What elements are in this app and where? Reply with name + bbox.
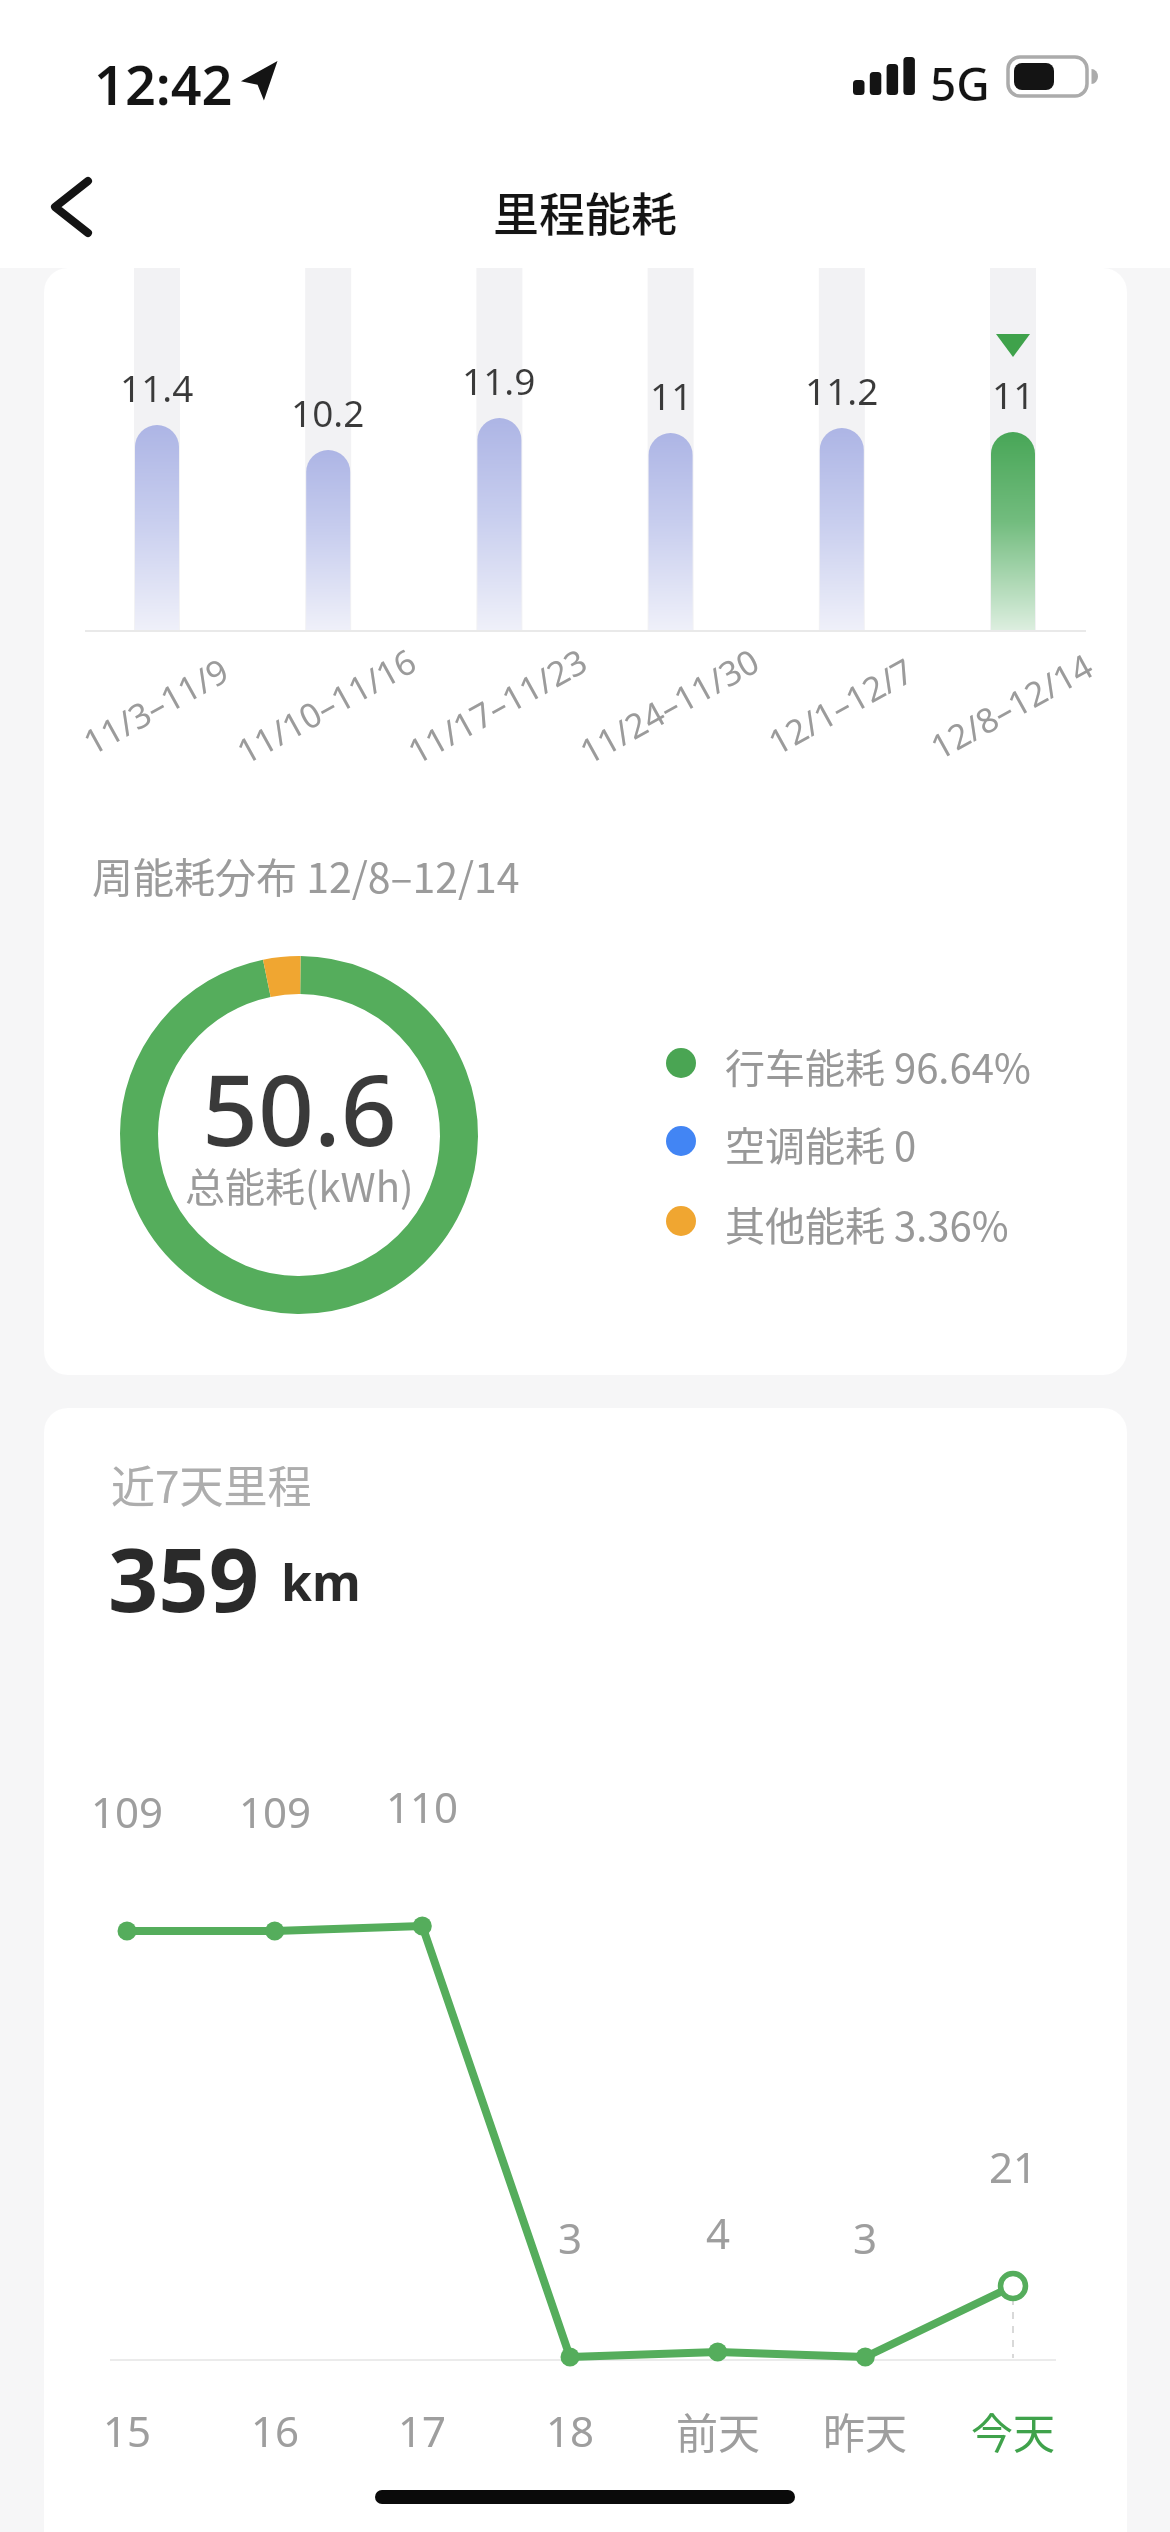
staticText: 11/10–11/16 [228, 638, 424, 774]
staticText: 21 [989, 2138, 1038, 2195]
staticText: 4 [706, 2204, 731, 2261]
staticText: 11/17–11/23 [399, 638, 595, 774]
staticText: 12/1–12/7 [760, 647, 921, 765]
staticText: 周能耗分布 12/8–12/14 [92, 845, 520, 904]
staticText: 今天 [971, 2400, 1056, 2461]
staticText: 11.9 [462, 355, 536, 405]
staticText: 行车能耗 96.64% [725, 1037, 1031, 1095]
staticText: 109 [239, 1783, 312, 1840]
staticText: 12:42 [94, 47, 233, 121]
staticText: km [281, 1548, 361, 1616]
staticText: 50.6 [202, 1041, 397, 1174]
staticText: 17 [398, 2402, 447, 2459]
staticText: 其他能耗 3.36% [725, 1195, 1009, 1253]
staticText: 15 [103, 2402, 152, 2459]
staticText: 里程能耗 [493, 178, 677, 238]
staticText: 空调能耗 0 [725, 1115, 917, 1173]
staticText: 近7天里程 [111, 1452, 312, 1516]
staticText: 总能耗(kWh) [185, 1156, 414, 1214]
staticText: 359 [108, 1518, 260, 1638]
staticText: 10.2 [291, 387, 365, 437]
staticText: 109 [91, 1783, 164, 1840]
staticText: 11 [992, 369, 1035, 419]
staticText: 110 [386, 1778, 459, 1835]
staticText: 3 [558, 2209, 583, 2266]
staticText: 5G [930, 52, 990, 115]
staticText: 11 [650, 370, 693, 420]
button[interactable] [30, 167, 120, 247]
staticText: 12/8–12/14 [922, 642, 1101, 769]
staticText: 11.2 [805, 365, 879, 415]
staticText: 昨天 [823, 2400, 908, 2461]
staticText: 16 [251, 2402, 300, 2459]
staticText: 18 [546, 2402, 595, 2459]
staticText: 3 [853, 2209, 878, 2266]
staticText: 11.4 [120, 362, 194, 412]
staticText: 前天 [676, 2400, 761, 2461]
staticText: 11/24–11/30 [571, 638, 767, 774]
staticText: 11/3–11/9 [75, 647, 236, 765]
